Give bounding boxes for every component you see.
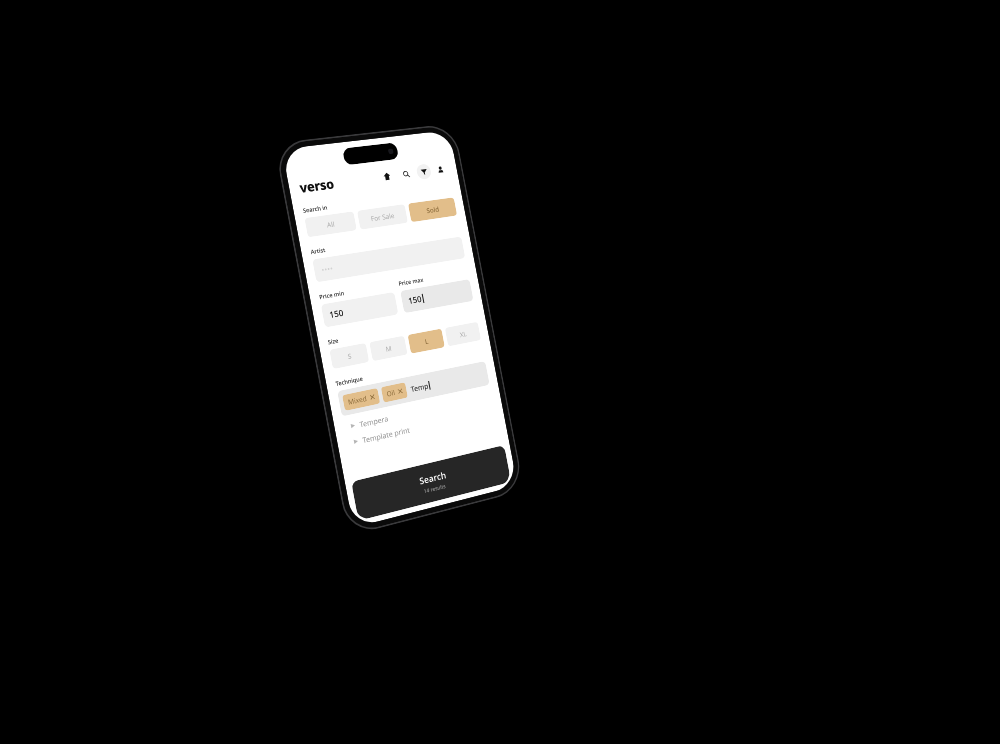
staticText: Price min	[318, 289, 345, 301]
staticText: Size	[327, 336, 339, 346]
staticText: L	[424, 336, 429, 346]
button[interactable]: Template print	[345, 403, 496, 451]
button[interactable]: Mixed	[337, 361, 490, 417]
button[interactable]: 150	[321, 292, 399, 328]
button[interactable]: 150	[400, 279, 474, 313]
staticText: Oil	[386, 388, 396, 399]
staticText: 150	[407, 293, 423, 307]
staticText: Price max	[398, 275, 424, 287]
button[interactable]: Profile	[432, 161, 449, 178]
staticText: 14 results	[423, 482, 446, 495]
button[interactable]: ••••	[312, 236, 465, 282]
staticText: S	[347, 351, 353, 361]
staticText: Artist	[310, 246, 326, 256]
button[interactable]: For Sale	[357, 204, 408, 230]
button[interactable]: Mixed	[342, 388, 380, 411]
staticText: XL	[459, 329, 468, 339]
staticText: Tempera	[359, 413, 389, 429]
button[interactable]: Search	[351, 445, 511, 521]
button[interactable]: Filter	[415, 163, 432, 180]
staticText: For Sale	[370, 211, 395, 223]
staticText: M	[385, 343, 392, 354]
button[interactable]: Sold	[408, 197, 457, 222]
button[interactable]: L	[407, 328, 445, 354]
button[interactable]: Tempera	[342, 388, 493, 436]
button[interactable]: Oil	[381, 382, 408, 403]
button[interactable]: Search	[397, 165, 414, 182]
staticText: verso	[298, 174, 335, 196]
staticText: ••••	[320, 263, 334, 275]
button[interactable]: XL	[445, 322, 481, 346]
button[interactable]: Home	[378, 168, 396, 185]
button[interactable]: S	[329, 343, 369, 369]
staticText: 150	[328, 307, 344, 321]
button[interactable]: M	[369, 336, 408, 361]
staticText: Mixed	[347, 393, 368, 407]
staticText: Template print	[362, 425, 411, 445]
staticText: Technique	[335, 374, 363, 388]
staticText: Temp	[410, 381, 429, 394]
staticText: Sold	[426, 204, 440, 215]
staticText: Search in	[302, 203, 328, 214]
button[interactable]: All	[304, 211, 357, 237]
staticText: Search	[418, 469, 447, 487]
staticText: All	[326, 219, 336, 230]
